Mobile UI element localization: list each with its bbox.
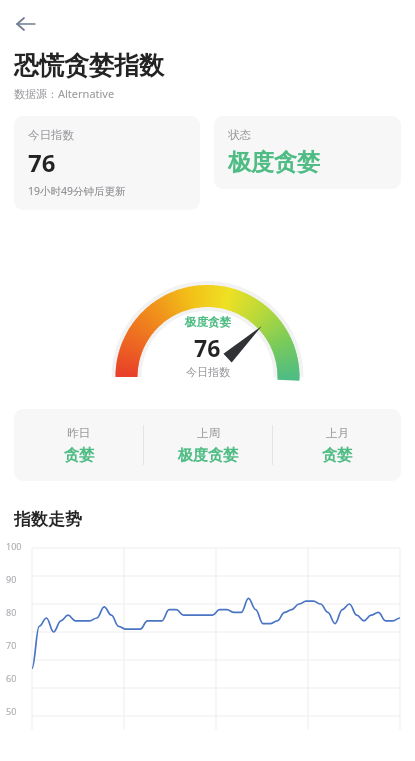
staticText: 70 [6, 639, 17, 651]
staticText: 极度贪婪 [228, 148, 320, 177]
button[interactable]: 上月 [273, 418, 401, 473]
staticText: 90 [6, 573, 17, 585]
staticText: 极度贪婪 [185, 315, 231, 329]
staticText: 76 [194, 332, 221, 363]
staticText: 极度贪婪 [178, 446, 238, 465]
staticText: 贪婪 [322, 446, 352, 465]
staticText: 80 [6, 606, 17, 618]
staticText: 状态 [228, 128, 251, 142]
staticText: 恐慌贪婪指数 [14, 50, 164, 81]
staticText: 50 [6, 705, 17, 717]
staticText: 上周 [197, 426, 220, 440]
staticText: 昨日 [67, 426, 90, 440]
button[interactable]: 今日指数 [14, 116, 200, 210]
staticText: 60 [6, 672, 17, 684]
staticText: 76 [28, 146, 56, 179]
staticText: 指数走势 [14, 509, 82, 530]
button[interactable]: 上周 [144, 418, 272, 473]
staticText: 贪婪 [64, 446, 94, 465]
staticText: 19小时49分钟后更新 [28, 184, 126, 198]
staticText: 上月 [326, 426, 349, 440]
staticText: 今日指数 [28, 128, 74, 142]
button[interactable]: Back [8, 6, 44, 42]
staticText: 今日指数 [186, 365, 230, 379]
staticText: 100 [6, 540, 22, 552]
button[interactable]: 昨日 [14, 418, 143, 473]
button[interactable]: 状态 [214, 116, 401, 189]
staticText: 数据源：Alternative [14, 86, 115, 101]
